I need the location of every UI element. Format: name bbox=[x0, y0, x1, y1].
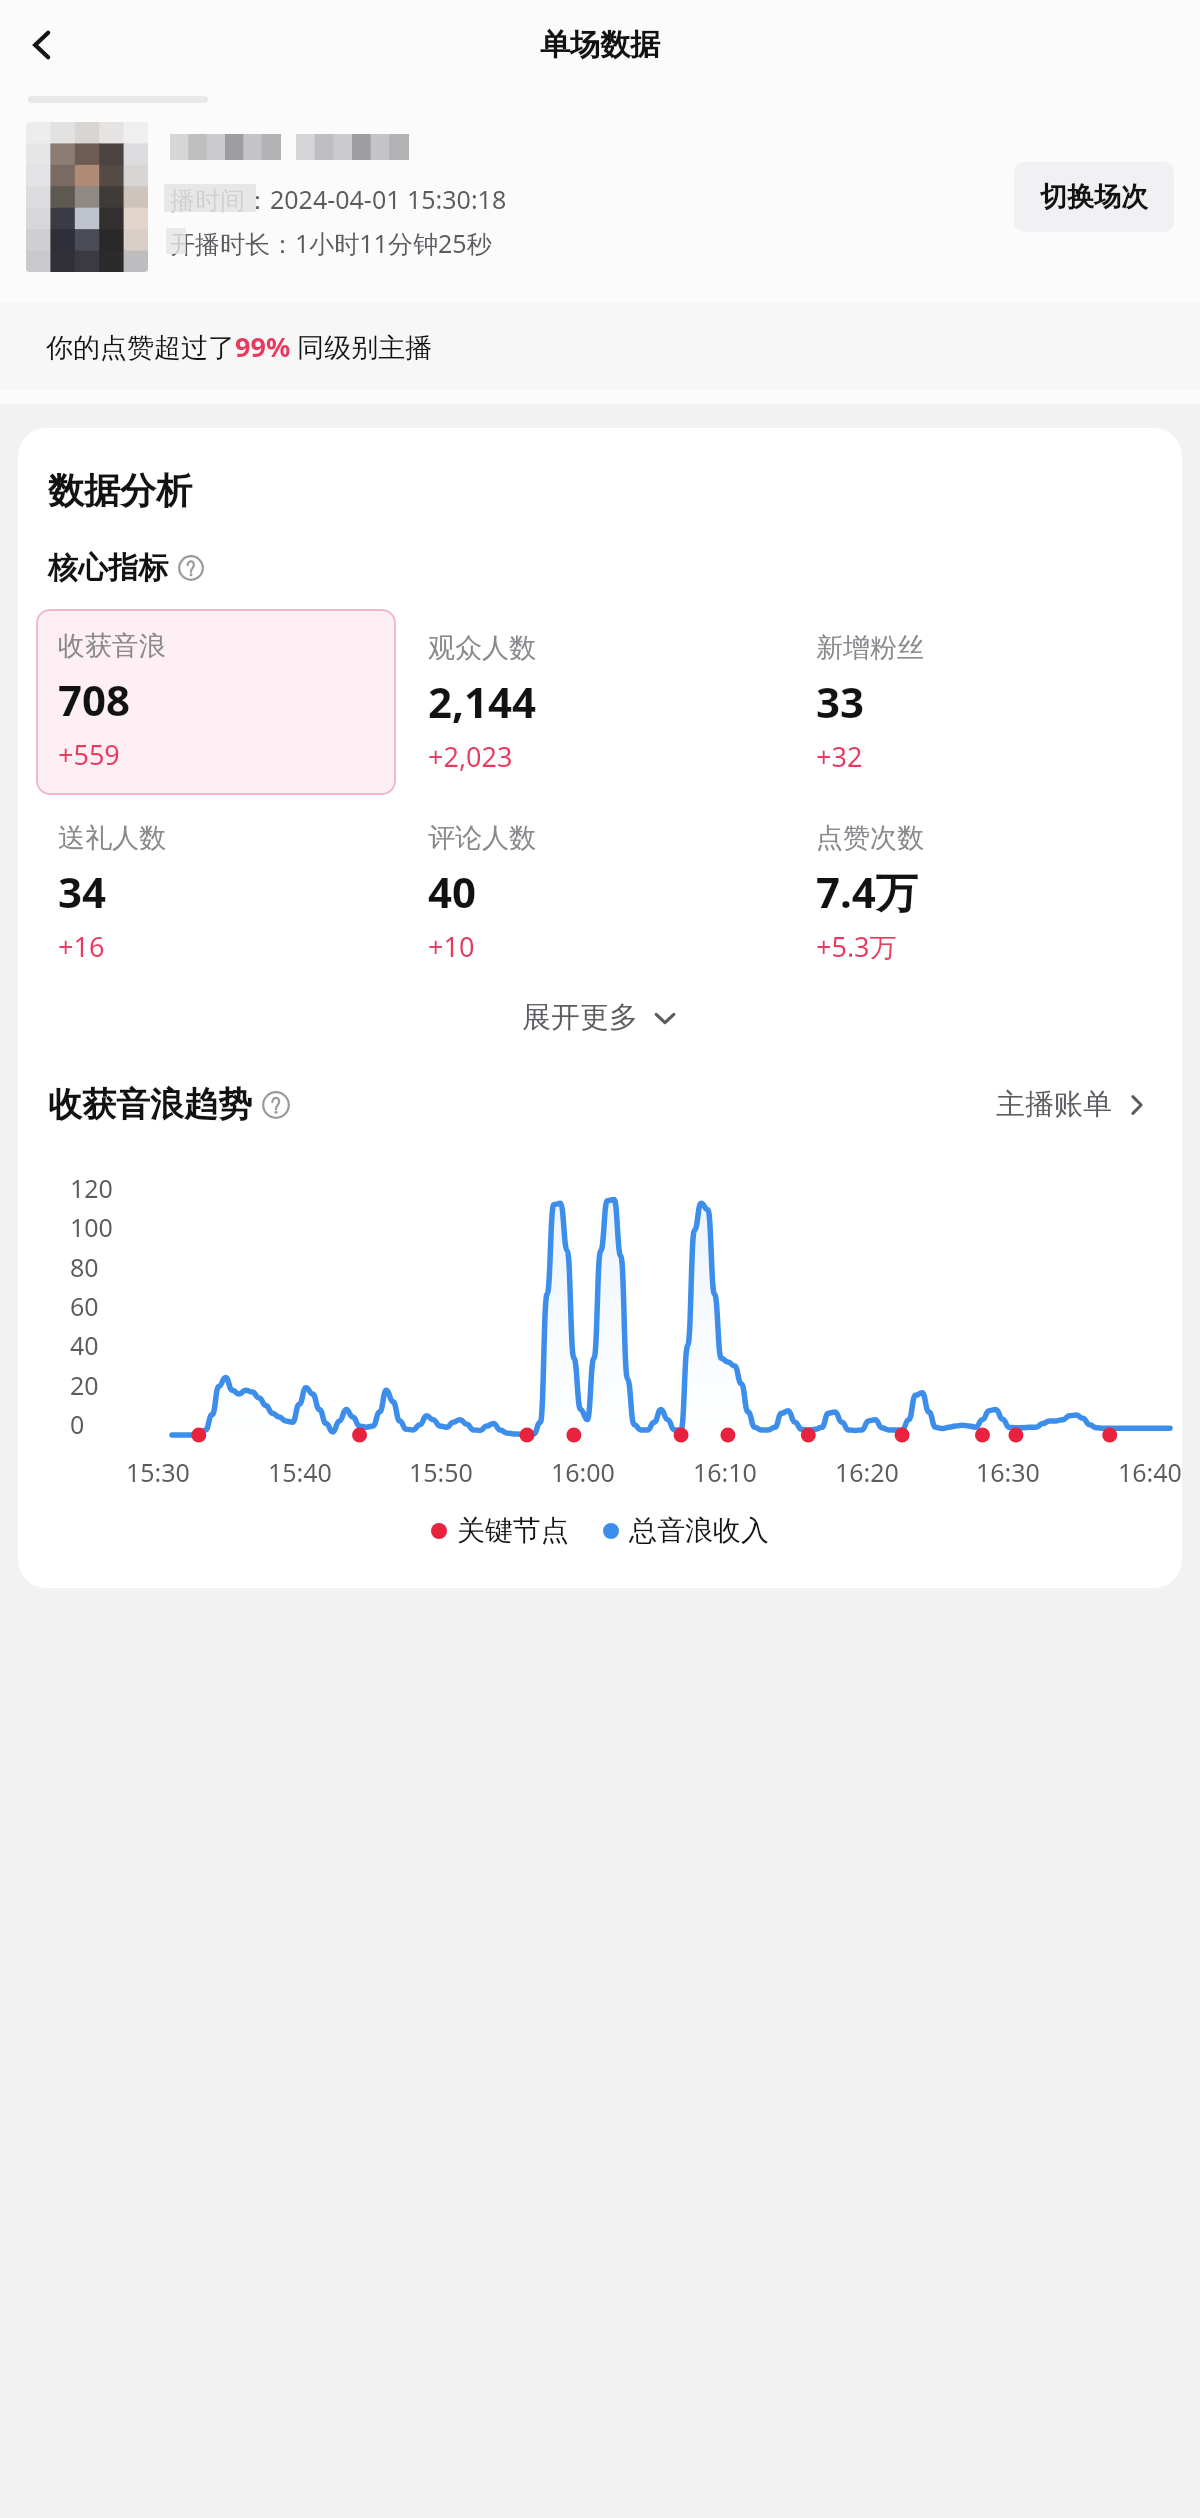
staticText: 数据分析 bbox=[48, 468, 192, 513]
staticText: 开播时长：1小时11分钟25秒 bbox=[170, 226, 492, 260]
button[interactable]: 点赞次数 bbox=[816, 821, 1182, 965]
staticText: 观众人数 bbox=[428, 631, 536, 665]
staticText: 34 bbox=[58, 863, 107, 920]
staticText: 单场数据 bbox=[540, 26, 660, 64]
staticText: +559 bbox=[58, 736, 120, 773]
staticText: 708 bbox=[58, 671, 131, 728]
staticText: 16:40 bbox=[1118, 1455, 1182, 1489]
staticText: 60 bbox=[70, 1289, 99, 1323]
staticText: +32 bbox=[816, 738, 863, 775]
staticText: 40 bbox=[428, 863, 477, 920]
button[interactable]: 评论人数 bbox=[428, 821, 794, 965]
staticText: 100 bbox=[70, 1210, 113, 1244]
button[interactable]: 展开更多 bbox=[498, 983, 702, 1052]
staticText: 展开更多 bbox=[522, 999, 638, 1036]
button[interactable]: 主播账单 bbox=[990, 1078, 1156, 1131]
staticText: 0 bbox=[70, 1407, 85, 1441]
staticText: 16:10 bbox=[693, 1455, 757, 1489]
staticText: 16:00 bbox=[551, 1455, 615, 1489]
button[interactable]: 送礼人数 bbox=[58, 821, 406, 965]
staticText: +2,023 bbox=[428, 738, 513, 775]
staticText: 40 bbox=[70, 1328, 99, 1362]
staticText: 7.4万 bbox=[816, 863, 918, 920]
staticText: +5.3万 bbox=[816, 928, 897, 965]
staticText: 核心指标 bbox=[48, 549, 168, 587]
staticText: 15:50 bbox=[409, 1455, 473, 1489]
staticText: 切换场次 bbox=[1040, 180, 1148, 214]
button[interactable]: 观众人数 bbox=[428, 631, 794, 775]
staticText: 15:40 bbox=[268, 1455, 332, 1489]
staticText: 新增粉丝 bbox=[816, 631, 924, 665]
staticText: 20 bbox=[70, 1368, 99, 1402]
staticText: 关键节点 bbox=[457, 1513, 569, 1548]
staticText: 收获音浪 bbox=[58, 629, 166, 663]
staticText: 你的点赞超过了99% 同级别主播 bbox=[46, 328, 433, 365]
staticText: +16 bbox=[58, 928, 105, 965]
staticText: 收获音浪趋势 bbox=[48, 1083, 252, 1126]
staticText: 16:20 bbox=[835, 1455, 899, 1489]
staticText: 2,144 bbox=[428, 673, 537, 730]
staticText: 主播账单 bbox=[996, 1086, 1112, 1123]
staticText: 15:30 bbox=[126, 1455, 190, 1489]
button[interactable]: Back bbox=[14, 17, 70, 73]
button[interactable]: 收获音浪 bbox=[36, 609, 396, 795]
staticText: 16:30 bbox=[976, 1455, 1040, 1489]
button[interactable]: 新增粉丝 bbox=[816, 631, 1182, 775]
staticText: 播时间：2024-04-01 15:30:18 bbox=[170, 182, 507, 216]
staticText: +10 bbox=[428, 928, 475, 965]
staticText: 33 bbox=[816, 673, 865, 730]
staticText: 送礼人数 bbox=[58, 821, 166, 855]
staticText: 80 bbox=[70, 1250, 99, 1284]
staticText: 120 bbox=[70, 1171, 113, 1205]
staticText: 总音浪收入 bbox=[629, 1513, 769, 1548]
staticText: 评论人数 bbox=[428, 821, 536, 855]
staticText: 点赞次数 bbox=[816, 821, 924, 855]
button[interactable]: 切换场次 bbox=[1014, 162, 1174, 232]
